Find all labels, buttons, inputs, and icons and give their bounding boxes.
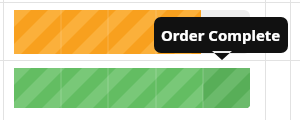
button[interactable]: Order progress bbox=[0, 0, 300, 120]
